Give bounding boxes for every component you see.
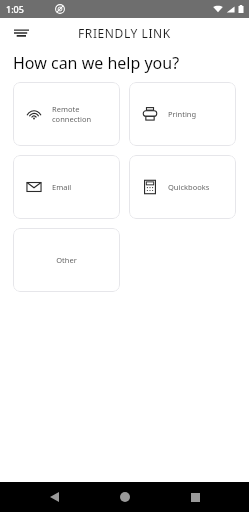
button[interactable]: Printing (129, 82, 236, 146)
staticText: Printing (168, 109, 197, 119)
staticText: How can we help you? (13, 52, 180, 74)
staticText: Quickbooks (168, 182, 210, 192)
staticText: FRIENDLY LINK (78, 25, 171, 41)
button[interactable]: Open navigation menu (8, 20, 34, 46)
button[interactable]: Home (108, 482, 142, 512)
button[interactable]: Remote connection (13, 82, 120, 146)
button[interactable]: Back (37, 482, 71, 512)
staticText: Remote connection (52, 104, 92, 124)
button[interactable]: Quickbooks (129, 155, 236, 219)
staticText: 1:05 (6, 3, 24, 15)
button[interactable]: Email (13, 155, 120, 219)
button[interactable]: Other (13, 228, 120, 292)
staticText: Email (52, 182, 72, 192)
staticText: Other (56, 255, 77, 265)
button[interactable]: Recent apps (178, 482, 212, 512)
